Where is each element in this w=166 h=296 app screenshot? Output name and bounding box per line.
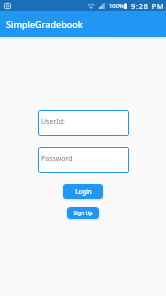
staticText: Password — [41, 154, 73, 164]
button[interactable]: Login — [63, 184, 103, 199]
button[interactable]: UserId: — [38, 110, 129, 136]
staticText: 9:28 PM — [131, 1, 165, 11]
staticText: UserId: — [41, 117, 65, 127]
button[interactable]: Sign Up — [67, 207, 99, 219]
staticText: 100% — [109, 2, 125, 10]
staticText: SimpleGradebook — [6, 18, 83, 30]
staticText: Sign Up — [73, 209, 93, 216]
button[interactable]: Password — [38, 147, 129, 173]
staticText: Login — [75, 187, 92, 195]
